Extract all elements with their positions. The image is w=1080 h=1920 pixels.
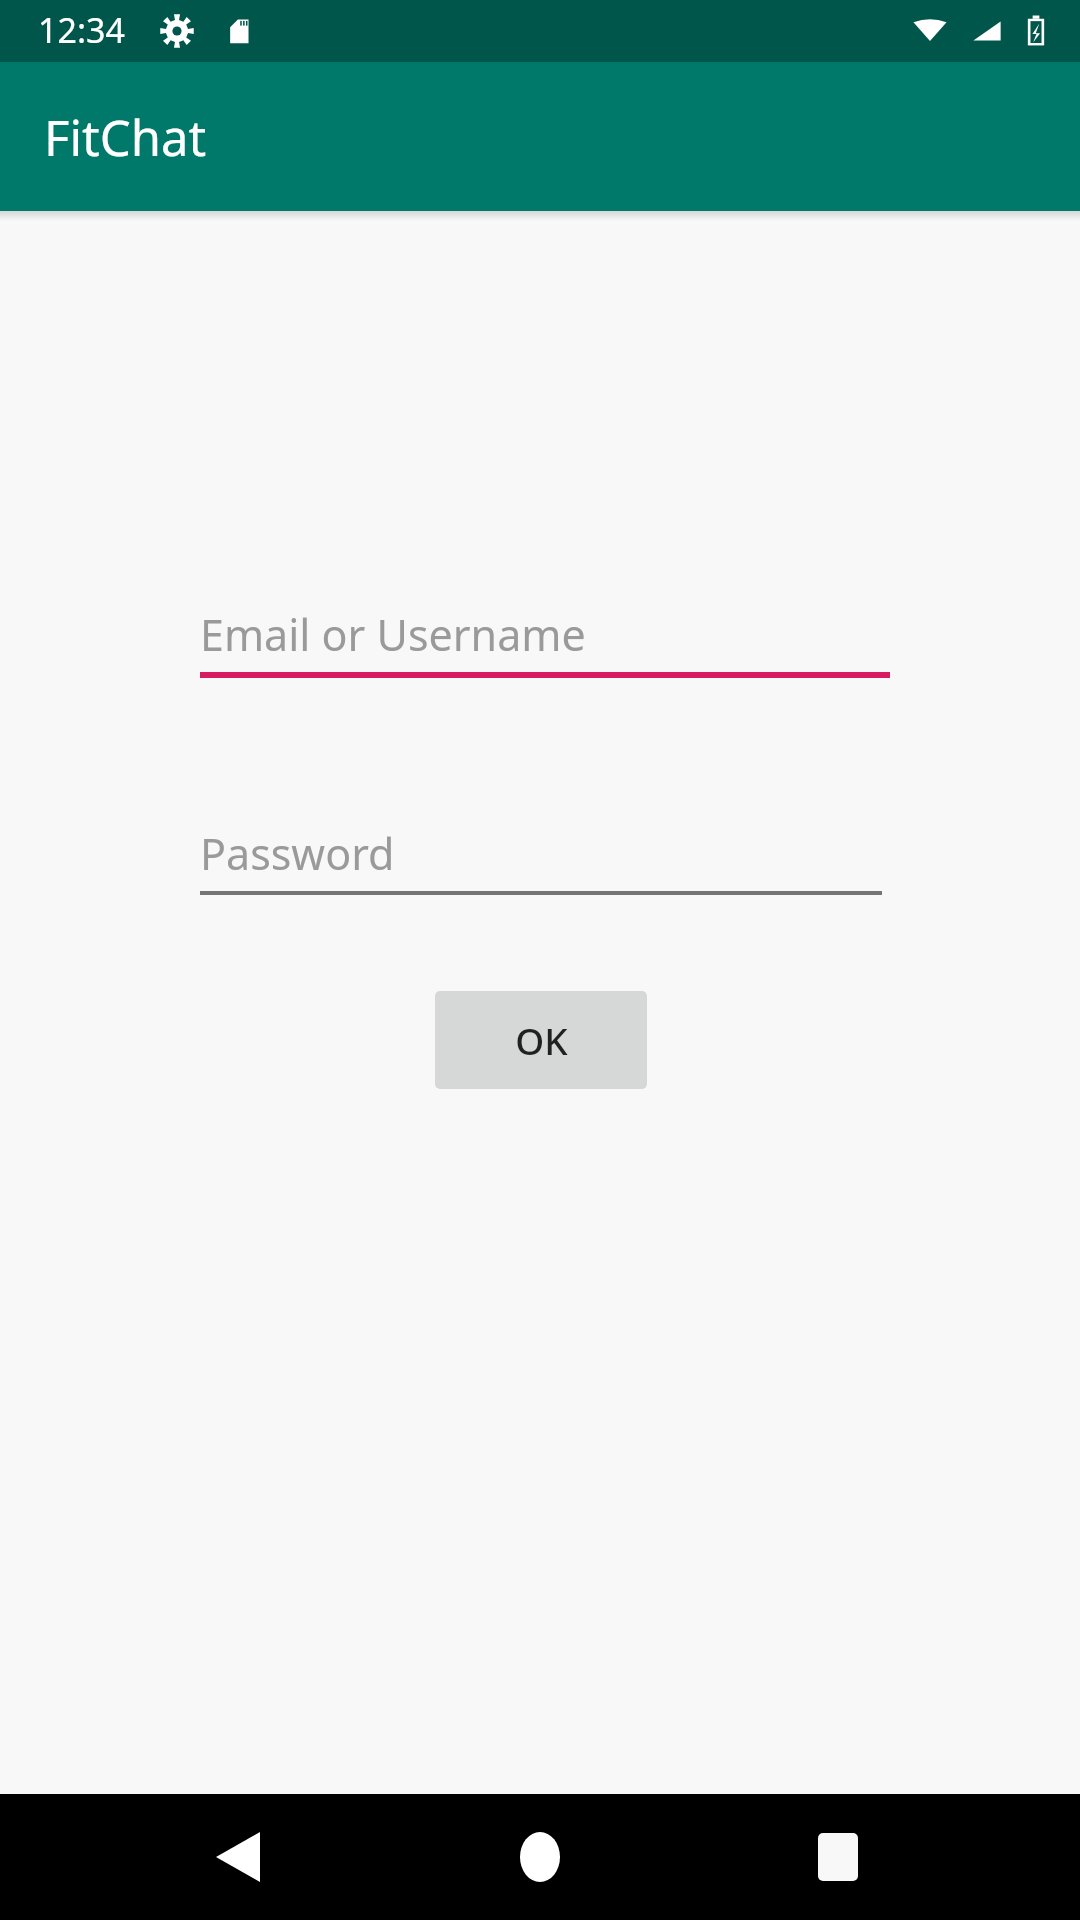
staticText: OK: [515, 1015, 568, 1065]
button[interactable]: Back: [180, 1799, 296, 1915]
staticText: Email or Username: [200, 605, 586, 664]
staticText: 12:34: [38, 7, 125, 53]
button[interactable]: OK: [435, 991, 647, 1089]
button[interactable]: Recent apps: [780, 1799, 896, 1915]
button[interactable]: Email or Username input: [200, 596, 890, 678]
staticText: FitChat: [44, 104, 207, 171]
button[interactable]: Home: [482, 1799, 598, 1915]
button[interactable]: Password input: [200, 815, 882, 895]
staticText: Password: [200, 824, 395, 883]
